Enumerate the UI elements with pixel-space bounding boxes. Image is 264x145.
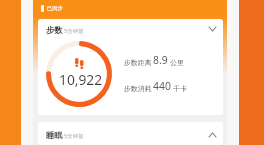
staticText: 已同步: [47, 5, 63, 12]
staticText: 步数: [46, 25, 63, 35]
staticText: 5分钟前: [64, 27, 84, 35]
staticText: 5分钟前: [64, 132, 84, 140]
staticText: 睡眠: [46, 130, 63, 140]
staticText: 10,922: [59, 70, 103, 89]
staticText: 8.9: [153, 53, 168, 67]
button[interactable]: 步数: [38, 19, 223, 115]
staticText: 440: [153, 79, 171, 93]
button[interactable]: Expand sleep card: [205, 128, 219, 142]
button[interactable]: 睡眠: [38, 122, 223, 145]
staticText: 步数消耗: [124, 84, 152, 93]
staticText: 公里: [170, 58, 184, 67]
button[interactable]: Collapse steps card: [205, 22, 219, 36]
staticText: 步数距离: [124, 58, 152, 67]
staticText: 千卡: [173, 84, 187, 93]
